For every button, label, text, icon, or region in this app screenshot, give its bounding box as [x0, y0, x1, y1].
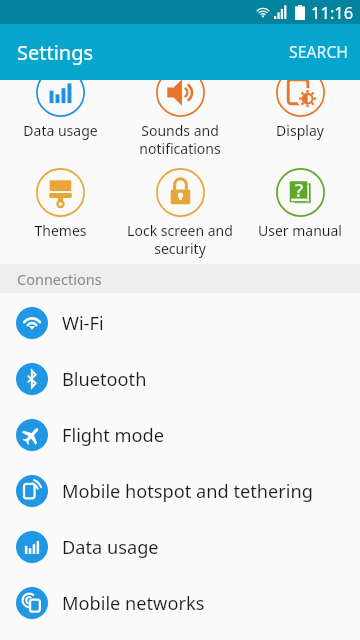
button[interactable]: Data usage: [0, 68, 120, 140]
staticText: Mobile networks: [62, 591, 205, 616]
button[interactable]: Search settings: [278, 24, 360, 80]
button[interactable]: Bluetooth: [0, 351, 360, 407]
button[interactable]: Mobile networks: [0, 575, 360, 631]
staticText: SEARCH: [289, 41, 349, 63]
staticText: ?: [295, 178, 304, 203]
staticText: Display: [276, 121, 324, 140]
staticText: User manual: [258, 221, 342, 240]
staticText: Wi-Fi: [62, 311, 104, 336]
button[interactable]: Wi-Fi: [0, 295, 360, 351]
button[interactable]: Display: [240, 68, 360, 140]
button[interactable]: Mobile hotspot and tethering: [0, 463, 360, 519]
staticText: Bluetooth: [62, 367, 147, 392]
button[interactable]: Flight mode: [0, 407, 360, 463]
staticText: Connections: [17, 269, 102, 289]
staticText: 11:16: [311, 1, 354, 23]
staticText: Themes: [34, 221, 87, 240]
staticText: Sounds and notifications: [139, 121, 221, 158]
staticText: Mobile hotspot and tethering: [62, 479, 313, 504]
staticText: Settings: [17, 39, 94, 66]
button[interactable]: Sounds and notifications: [120, 68, 240, 158]
button[interactable]: Data usage: [0, 519, 360, 575]
staticText: Flight mode: [62, 423, 164, 448]
button[interactable]: Themes: [0, 168, 120, 240]
button[interactable]: Lock screen and security: [120, 168, 240, 258]
staticText: Lock screen and security: [127, 221, 233, 258]
staticText: Data usage: [62, 535, 159, 560]
staticText: Data usage: [23, 121, 98, 140]
button[interactable]: ?: [240, 168, 360, 240]
